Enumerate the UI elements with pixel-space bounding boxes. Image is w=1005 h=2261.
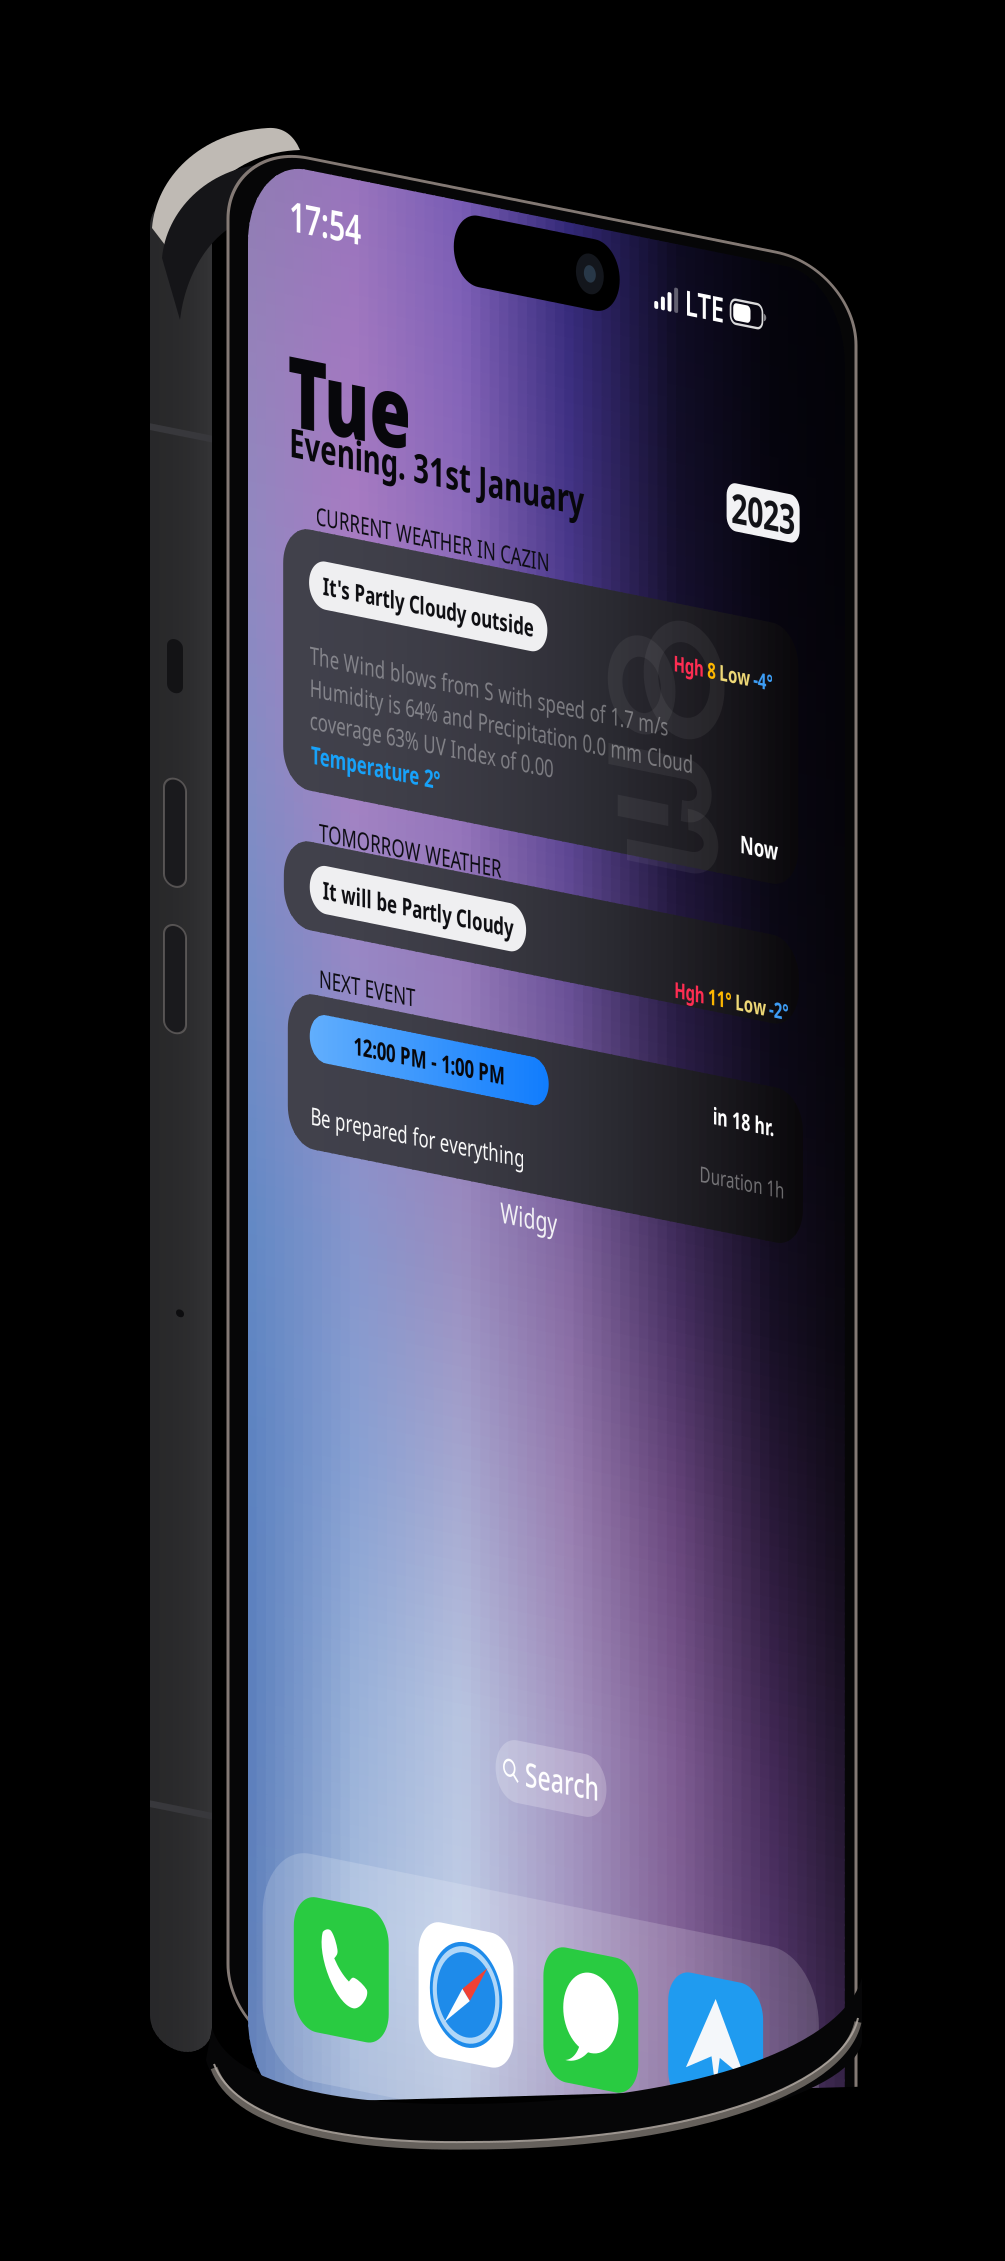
staticText: Evening. 31st January: [310, 416, 755, 471]
staticText: CURRENT WEATHER IN CAZIN: [350, 498, 702, 532]
staticText: The Wind blows from S with speed of 1.7 …: [341, 644, 919, 745]
button[interactable]: Phone: [317, 1950, 460, 2090]
staticText: NEXT EVENT: [355, 978, 500, 1012]
staticText: Be prepared for everything: [342, 1122, 665, 1156]
button[interactable]: Search: [621, 1745, 788, 1810]
staticText: Search: [665, 1754, 777, 1800]
staticText: TOMORROW WEATHER: [355, 826, 630, 860]
staticText: Tue: [308, 321, 494, 456]
staticText: 17:54: [310, 180, 418, 237]
staticText: Widgy: [628, 1180, 714, 1219]
staticText: 12:00 PM - 1:00 PM: [407, 1040, 635, 1074]
staticText: It will be Partly Cloudy: [360, 885, 647, 919]
button[interactable]: Messages: [693, 1950, 836, 2090]
button[interactable]: Safari: [505, 1950, 648, 2090]
staticText: It's Partly Cloudy outside: [360, 569, 678, 603]
staticText: Temperature 2°: [343, 747, 538, 781]
